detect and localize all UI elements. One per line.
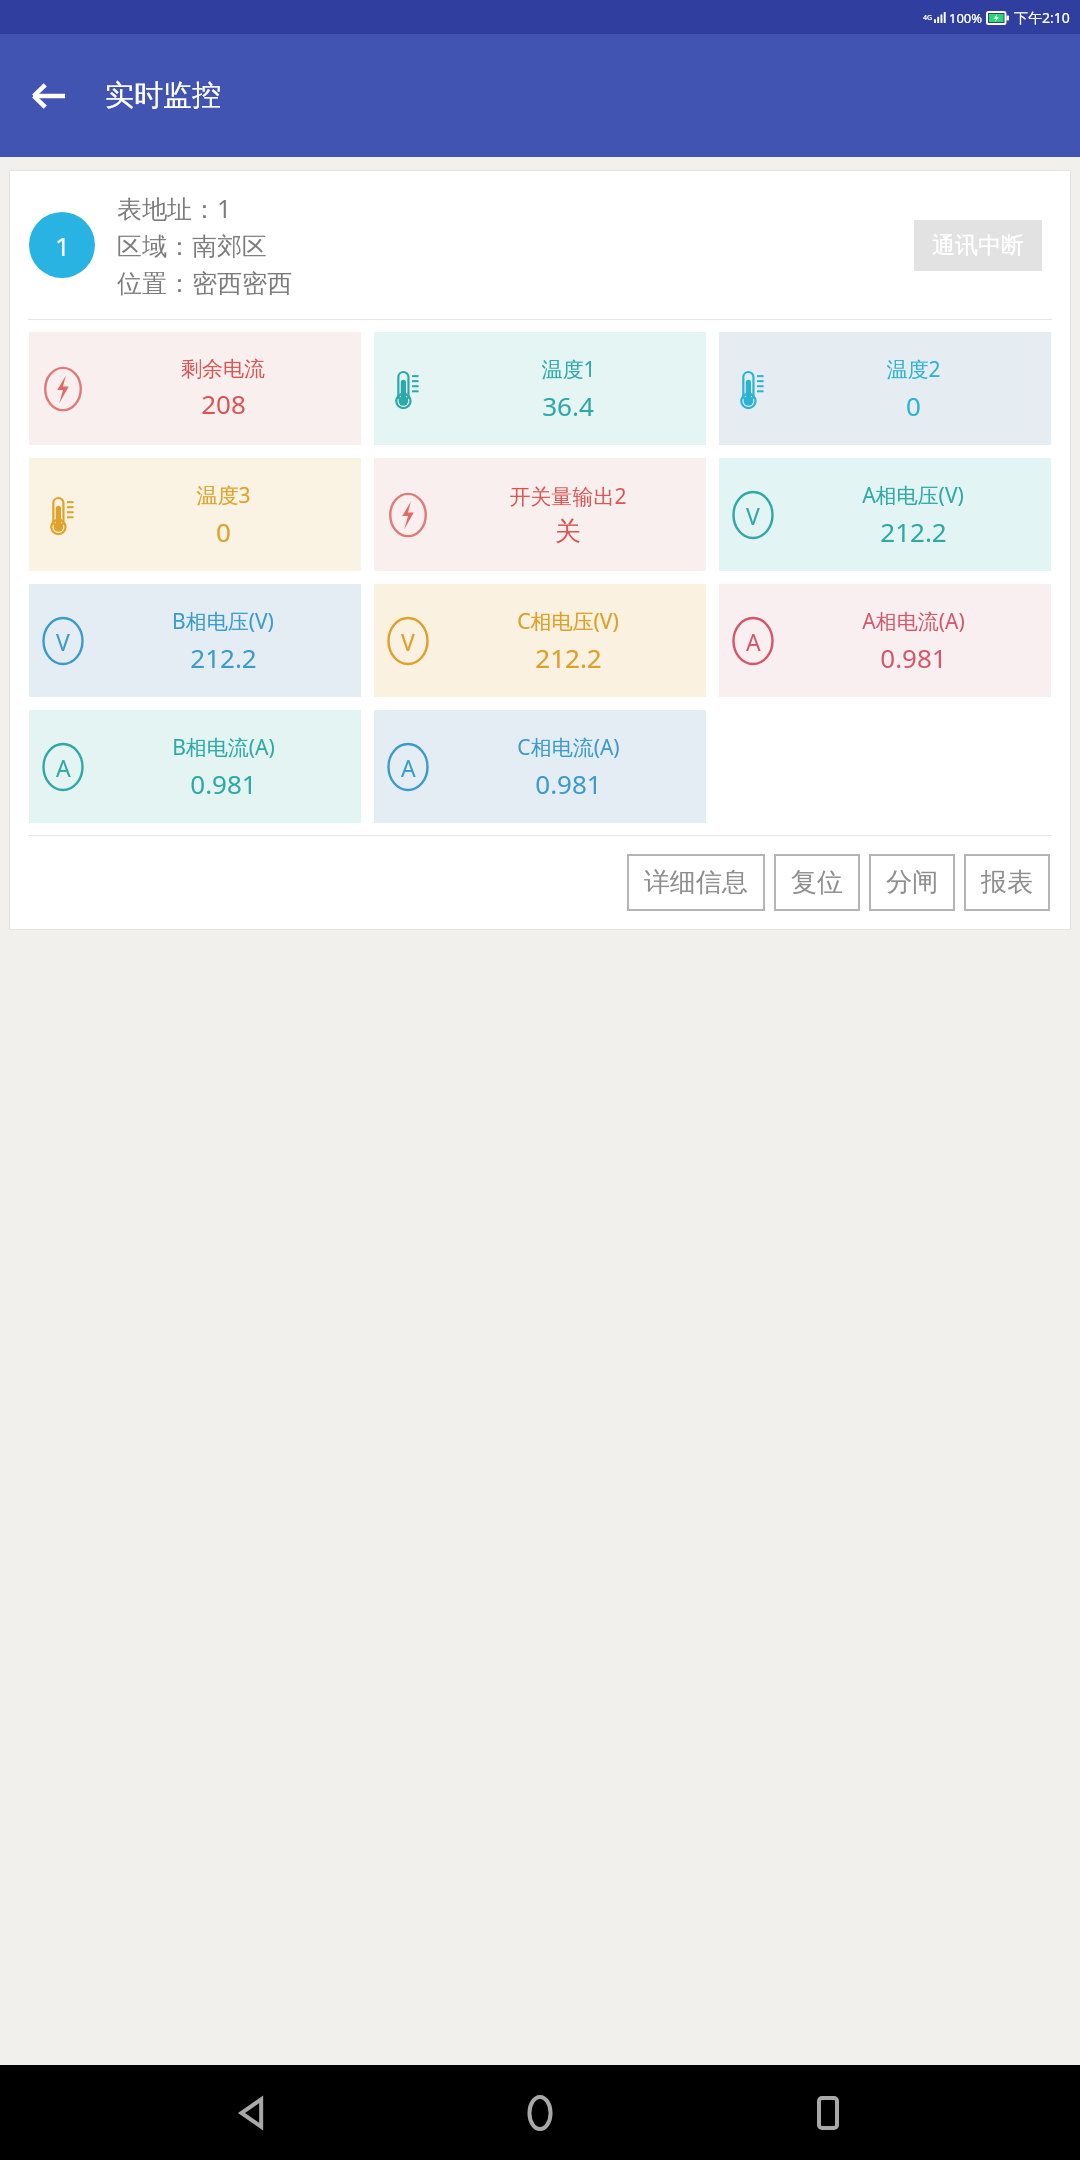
staticText: 0 [216,514,231,549]
staticText: A [746,626,761,657]
staticText: B相电流(A) [172,733,275,762]
button[interactable]: 温度2 [719,332,1051,445]
staticText: A [56,752,71,783]
button[interactable]: 详细信息 [627,854,765,911]
staticText: 详细信息 [644,866,748,899]
staticText: 复位 [791,866,843,899]
button[interactable]: A [719,584,1051,697]
button[interactable]: 报表 [964,854,1050,911]
button[interactable]: V [29,584,361,697]
staticText: A相电流(A) [862,607,965,636]
button[interactable]: 最近任务 [793,2078,863,2148]
staticText: 温度2 [886,355,941,384]
staticText: 0.981 [880,640,947,675]
button[interactable]: 返回 [218,2078,288,2148]
button[interactable]: A [29,710,361,823]
staticText: 0.981 [190,766,257,801]
staticText: 表地址：1 [117,191,232,225]
staticText: V [401,626,415,657]
staticText: 关 [555,515,581,548]
staticText: 开关量输出2 [509,482,627,511]
button[interactable]: 通讯中断 [914,220,1042,271]
button[interactable]: A [374,710,706,823]
button[interactable]: 主屏幕 [505,2078,575,2148]
staticText: 区域：南郊区 [117,231,267,262]
staticText: 208 [201,386,246,421]
button[interactable]: V [374,584,706,697]
staticText: 1 [55,228,70,263]
staticText: B相电压(V) [172,607,274,636]
staticText: 0.981 [535,766,602,801]
staticText: 4G [923,13,933,23]
staticText: 位置：密西密西 [117,268,292,299]
staticText: 报表 [981,866,1033,899]
staticText: 0 [906,388,921,423]
staticText: 212.2 [535,640,602,675]
staticText: 温度1 [541,355,596,384]
staticText: A [401,752,416,783]
staticText: A相电压(V) [862,481,964,510]
button[interactable]: 返回 [20,68,76,124]
staticText: C相电流(A) [517,733,620,762]
staticText: 温度3 [196,481,251,510]
staticText: 36.4 [542,388,594,423]
staticText: V [56,626,70,657]
button[interactable]: 剩余电流 [29,332,361,445]
staticText: 100% [949,9,983,27]
staticText: 剩余电流 [181,356,265,382]
button[interactable]: 开关量输出2 [374,458,706,571]
button[interactable]: V [719,458,1051,571]
staticText: 实时监控 [105,77,221,114]
button[interactable]: 温度1 [374,332,706,445]
staticText: C相电压(V) [517,607,619,636]
staticText: 通讯中断 [932,231,1024,260]
button[interactable]: 复位 [774,854,860,911]
staticText: 分闸 [886,866,938,899]
button[interactable]: 温度3 [29,458,361,571]
staticText: 212.2 [190,640,257,675]
button[interactable]: 分闸 [869,854,955,911]
staticText: 下午2:10 [1014,8,1070,27]
staticText: 212.2 [880,514,947,549]
staticText: V [746,500,760,531]
